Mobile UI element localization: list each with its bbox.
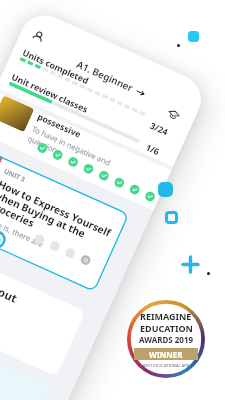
button[interactable]: Let's Talk About xyxy=(0,243,86,377)
button[interactable] xyxy=(36,142,49,154)
staticText: UNIT 3 xyxy=(3,166,27,184)
staticText: BEST EDUCATIONAL APP xyxy=(143,363,189,368)
button[interactable] xyxy=(82,162,95,175)
staticText: How to Express Yourself when Buying at t… xyxy=(0,177,116,262)
staticText: 1/6 xyxy=(144,141,161,158)
button[interactable] xyxy=(128,183,141,196)
button[interactable]: Continue xyxy=(0,205,9,251)
button[interactable]: A1. Beginner xyxy=(74,58,147,100)
staticText: There is, there are xyxy=(0,213,45,249)
button[interactable] xyxy=(97,169,110,182)
staticText: WINNER xyxy=(149,349,183,360)
other: Profile xyxy=(29,28,47,46)
staticText: REIMAGINE xyxy=(140,310,192,322)
button[interactable] xyxy=(67,155,79,168)
staticText: To have in negative and xyxy=(30,124,112,168)
staticText: possessive xyxy=(36,110,83,140)
button[interactable] xyxy=(113,176,126,189)
staticText: Units completed xyxy=(21,47,91,87)
button[interactable] xyxy=(0,95,34,132)
other: Courses xyxy=(166,107,181,122)
button[interactable] xyxy=(144,190,156,203)
button[interactable]: UNIT 3 xyxy=(0,146,130,292)
staticText: Let's Talk About xyxy=(0,255,20,306)
staticText: AWARDS 2019 xyxy=(139,334,194,345)
staticText: 3/24 xyxy=(148,120,170,138)
button[interactable] xyxy=(51,149,64,161)
button[interactable]: LIVE xyxy=(0,318,52,400)
staticText: A1. Beginner xyxy=(74,58,135,95)
staticText: questions xyxy=(26,133,63,157)
staticText: EDUCATION xyxy=(140,322,193,334)
staticText: Unit review classes xyxy=(10,71,90,116)
